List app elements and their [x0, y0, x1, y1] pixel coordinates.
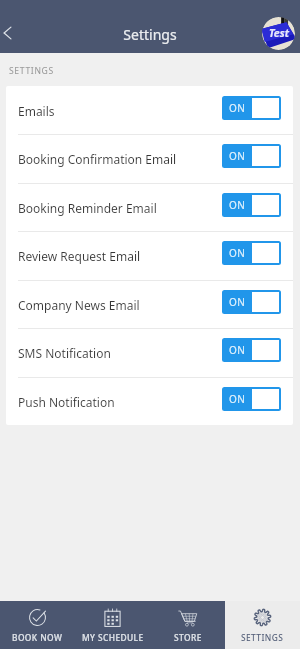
button[interactable]: Toggle on [222, 193, 281, 217]
staticText: Push Notification [18, 394, 115, 410]
button[interactable]: MY SCHEDULE [75, 601, 150, 649]
button[interactable]: Booking Confirmation Email [6, 134, 293, 182]
button[interactable]: Toggle on [222, 338, 281, 362]
staticText: Settings [123, 25, 177, 44]
staticText: ON [229, 149, 246, 163]
staticText: ON [229, 198, 246, 212]
button[interactable]: Back [0, 16, 26, 50]
staticText: ON [229, 343, 246, 357]
button[interactable]: Toggle on [222, 387, 281, 411]
staticText: SMS Notification [18, 345, 111, 361]
button[interactable]: BOOK NOW [0, 601, 75, 649]
staticText: Booking Confirmation Email [18, 151, 177, 167]
button[interactable]: SETTINGS [225, 601, 300, 649]
staticText: ON [229, 246, 246, 260]
button[interactable]: Booking Reminder Email [6, 183, 293, 231]
staticText: ON [229, 101, 246, 115]
staticText: MY SCHEDULE [82, 632, 144, 643]
staticText: BOOK NOW [12, 632, 63, 643]
button[interactable]: Review Request Email [6, 231, 293, 279]
staticText: ON [229, 392, 246, 406]
staticText: STORE [174, 632, 202, 643]
staticText: SETTINGS [9, 65, 54, 77]
button[interactable]: STORE [150, 601, 225, 649]
button[interactable]: Profile [262, 17, 295, 50]
staticText: Emails [18, 103, 55, 119]
button[interactable]: SMS Notification [6, 328, 293, 376]
button[interactable]: Toggle on [222, 96, 281, 120]
staticText: Test [269, 26, 289, 40]
staticText: ON [229, 295, 246, 309]
staticText: Booking Reminder Email [18, 200, 157, 216]
button[interactable]: Toggle on [222, 144, 281, 168]
button[interactable]: Emails [6, 86, 293, 134]
staticText: Review Request Email [18, 248, 141, 264]
button[interactable]: Company News Email [6, 280, 293, 328]
staticText: Company News Email [18, 297, 140, 313]
button[interactable]: Toggle on [222, 241, 281, 265]
button[interactable]: Toggle on [222, 290, 281, 314]
button[interactable]: Push Notification [6, 377, 293, 425]
staticText: SETTINGS [241, 632, 284, 643]
